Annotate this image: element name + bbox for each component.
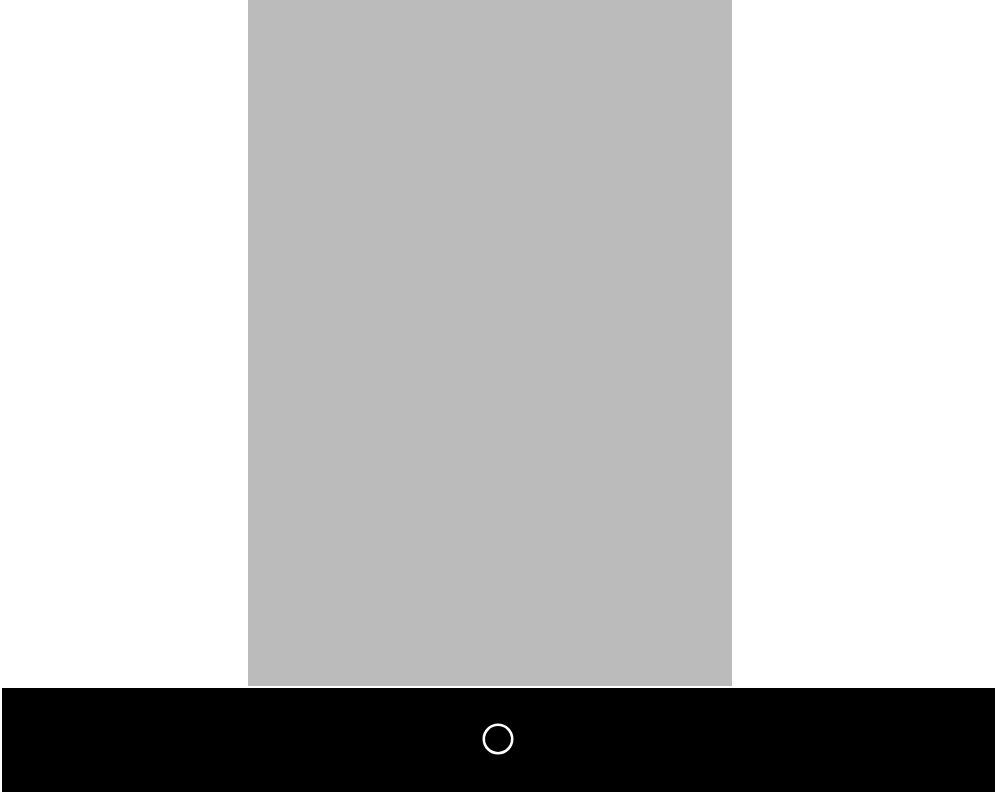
button[interactable]: Take photo — [474, 715, 522, 763]
